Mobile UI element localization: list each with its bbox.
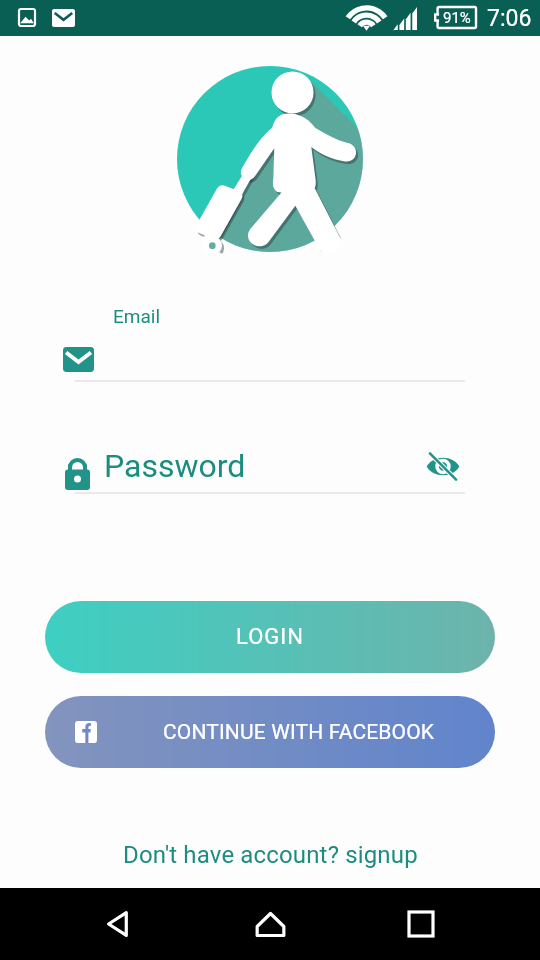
button[interactable]: Recent apps (389, 892, 453, 956)
button[interactable]: Home (238, 892, 302, 956)
staticText: 91% (443, 9, 471, 27)
staticText: 7:06 (487, 5, 532, 32)
staticText: CONTINUE WITH FACEBOOK (163, 720, 435, 745)
button[interactable]: Back (87, 892, 151, 956)
button[interactable]: Don't have account? signup (123, 841, 418, 869)
button[interactable]: CONTINUE WITH FACEBOOK (45, 696, 495, 768)
button[interactable]: Show password (421, 444, 465, 488)
button[interactable]: LOGIN (45, 601, 495, 673)
staticText: Password (104, 447, 246, 485)
staticText: LOGIN (236, 624, 304, 650)
staticText: Email (113, 305, 161, 327)
